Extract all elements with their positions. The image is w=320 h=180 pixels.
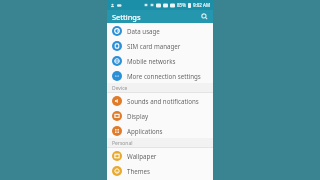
staticText: 9:02 AM (193, 2, 211, 8)
button[interactable]: Wallpaper (107, 148, 213, 163)
staticText: Personal (112, 140, 133, 147)
button[interactable]: SIM card manager (107, 38, 213, 53)
staticText: SIM card manager (127, 42, 181, 50)
staticText: Data usage (127, 27, 160, 35)
staticText: 85% (177, 2, 186, 8)
staticText: Settings (112, 12, 141, 22)
staticText: Applications (127, 127, 163, 135)
staticText: Sounds and notifications (127, 97, 199, 105)
staticText: Device (112, 85, 128, 92)
button[interactable]: Themes (107, 163, 213, 178)
staticText: Themes (127, 167, 150, 175)
staticText: Display (127, 112, 149, 120)
staticText: Mobile networks (127, 57, 176, 65)
button[interactable]: Display (107, 108, 213, 123)
button[interactable]: Sounds and notifications (107, 93, 213, 108)
button[interactable]: Mobile networks (107, 53, 213, 68)
staticText: Wallpaper (127, 152, 157, 160)
button[interactable]: Search (199, 11, 210, 22)
button[interactable]: Data usage (107, 23, 213, 38)
button[interactable]: Applications (107, 123, 213, 138)
button[interactable]: More connection settings (107, 68, 213, 83)
staticText: More connection settings (127, 72, 201, 80)
